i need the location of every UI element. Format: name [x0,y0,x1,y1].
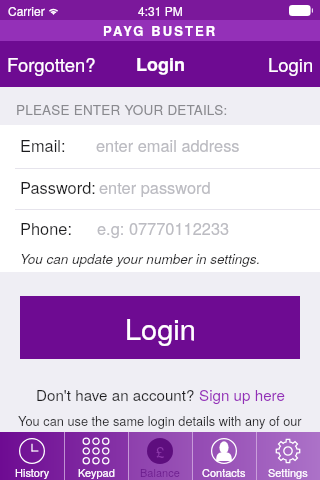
staticText: Login [125,307,196,349]
button[interactable]: Email: [0,122,320,166]
staticText: Don't have an account? [36,384,199,406]
staticText: Password: [20,175,96,198]
staticText: History [15,464,50,480]
staticText: PAYG BUSTER [103,21,218,40]
button[interactable]: Contacts [192,432,256,480]
button[interactable]: Login [20,296,300,359]
staticText: enter email address [96,133,240,156]
staticText: PLEASE ENTER YOUR DETAILS: [16,100,228,119]
button[interactable]: Forgotten? [0,41,104,87]
staticText: Carrier [8,2,45,19]
staticText: Email: [20,133,66,156]
staticText: Contacts [202,464,246,480]
staticText: You can update your number in settings. [20,249,261,268]
staticText: You can use the same login details with … [18,411,302,429]
staticText: Forgotten? [7,51,96,77]
staticText: Balance [140,464,180,480]
staticText: Keypad [78,464,115,480]
button[interactable]: Balance [128,432,192,480]
staticText: enter password [99,175,211,198]
staticText: Settings [268,464,308,480]
staticText: Login [136,51,185,77]
button[interactable]: Phone: [0,207,320,247]
staticText: 4:31 PM [138,2,183,19]
button[interactable]: Sign up here [199,384,285,406]
button[interactable]: History [0,432,64,480]
staticText: e.g: 07770112233 [97,216,230,239]
staticText: £ [156,441,165,462]
button[interactable]: Password: [0,166,320,207]
staticText: Phone: [20,216,72,239]
staticText: Login [268,51,314,77]
button[interactable]: Keypad [64,432,128,480]
button[interactable]: Login [260,41,320,87]
button[interactable]: Settings [256,432,320,480]
staticText: Sign up here [199,384,285,406]
